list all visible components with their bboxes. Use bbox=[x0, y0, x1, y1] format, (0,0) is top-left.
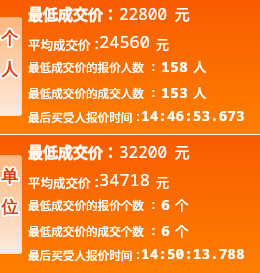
staticText: 24560 bbox=[99, 30, 150, 53]
staticText: 元 bbox=[153, 34, 169, 53]
staticText: ： bbox=[145, 59, 160, 76]
staticText: 最低成交价的成交个数 bbox=[28, 223, 144, 240]
staticText: 最后买受人报价时间： bbox=[28, 247, 144, 264]
staticText: 32200 bbox=[119, 141, 168, 163]
staticText: 34718 bbox=[99, 168, 150, 191]
staticText: 14:50:13.788 bbox=[141, 244, 245, 264]
staticText: 个 bbox=[1, 28, 18, 49]
staticText: 最低成交价的报价人数 bbox=[28, 59, 144, 76]
staticText: 元 bbox=[168, 141, 190, 163]
staticText: 153 bbox=[161, 82, 189, 102]
staticText: 6 bbox=[161, 220, 171, 240]
staticText: 人 bbox=[190, 56, 207, 76]
staticText: 单 bbox=[1, 166, 18, 187]
staticText: 人 bbox=[1, 59, 18, 80]
staticText: 最低成交价的成交人数 bbox=[28, 85, 144, 102]
staticText: 位 bbox=[1, 197, 18, 218]
staticText: 6 bbox=[161, 194, 171, 214]
staticText: 人 bbox=[190, 82, 207, 102]
button[interactable]: 个 bbox=[0, 17, 22, 116]
staticText: 158 bbox=[161, 56, 189, 76]
staticText: 14:46:53.673 bbox=[141, 106, 245, 126]
staticText: 平均成交价： bbox=[28, 35, 104, 53]
staticText: 位 bbox=[1, 197, 18, 218]
staticText: 最低成交价： bbox=[28, 3, 119, 25]
staticText: 元 bbox=[168, 3, 190, 25]
staticText: 个 bbox=[172, 220, 189, 240]
staticText: 22800 bbox=[119, 3, 168, 25]
staticText: 最低成交价的报价个数 bbox=[28, 197, 144, 214]
staticText: ： bbox=[145, 85, 160, 102]
staticText: 个 bbox=[172, 194, 189, 214]
staticText: 个 bbox=[1, 28, 18, 49]
staticText: 最后买受人报价时间： bbox=[28, 109, 144, 126]
staticText: 平均成交价： bbox=[28, 173, 104, 191]
staticText: ： bbox=[145, 223, 160, 240]
staticText: 最低成交价： bbox=[28, 141, 119, 163]
staticText: 单 bbox=[1, 166, 18, 187]
staticText: 人 bbox=[1, 59, 18, 80]
staticText: ： bbox=[145, 197, 160, 214]
staticText: 元 bbox=[153, 172, 169, 191]
button[interactable]: 单 bbox=[0, 155, 22, 254]
